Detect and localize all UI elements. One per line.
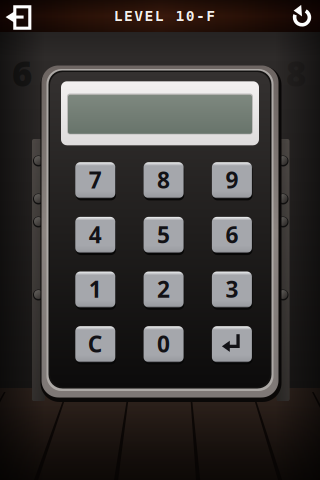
staticText: LEVEL 10-F [114, 8, 215, 24]
button[interactable]: 6 [211, 215, 252, 254]
button[interactable]: Restart level [276, 0, 320, 32]
staticText: 0 [157, 329, 170, 359]
button[interactable]: 0 [143, 325, 184, 364]
button[interactable]: 2 [143, 270, 184, 309]
staticText: 8 [286, 50, 306, 96]
staticText: 5 [157, 219, 170, 249]
staticText: 9 [225, 165, 238, 195]
staticText: 1 [89, 274, 102, 304]
button[interactable]: 4 [75, 215, 116, 254]
staticText: 2 [157, 274, 170, 304]
staticText: 3 [225, 274, 238, 304]
staticText: C [88, 329, 103, 359]
staticText: 8 [157, 165, 170, 195]
button[interactable]: C [75, 325, 116, 364]
staticText: 6 [12, 50, 32, 96]
button[interactable]: 9 [211, 161, 252, 200]
staticText: 4 [89, 219, 102, 249]
staticText: 7 [89, 165, 102, 195]
button[interactable]: 1 [75, 270, 116, 309]
button[interactable]: Enter [211, 325, 252, 364]
button[interactable]: 3 [211, 270, 252, 309]
button[interactable]: 7 [75, 161, 116, 200]
button[interactable]: 8 [143, 161, 184, 200]
staticText: 6 [225, 219, 238, 249]
button[interactable]: 5 [143, 215, 184, 254]
button[interactable]: Exit level [0, 0, 44, 32]
